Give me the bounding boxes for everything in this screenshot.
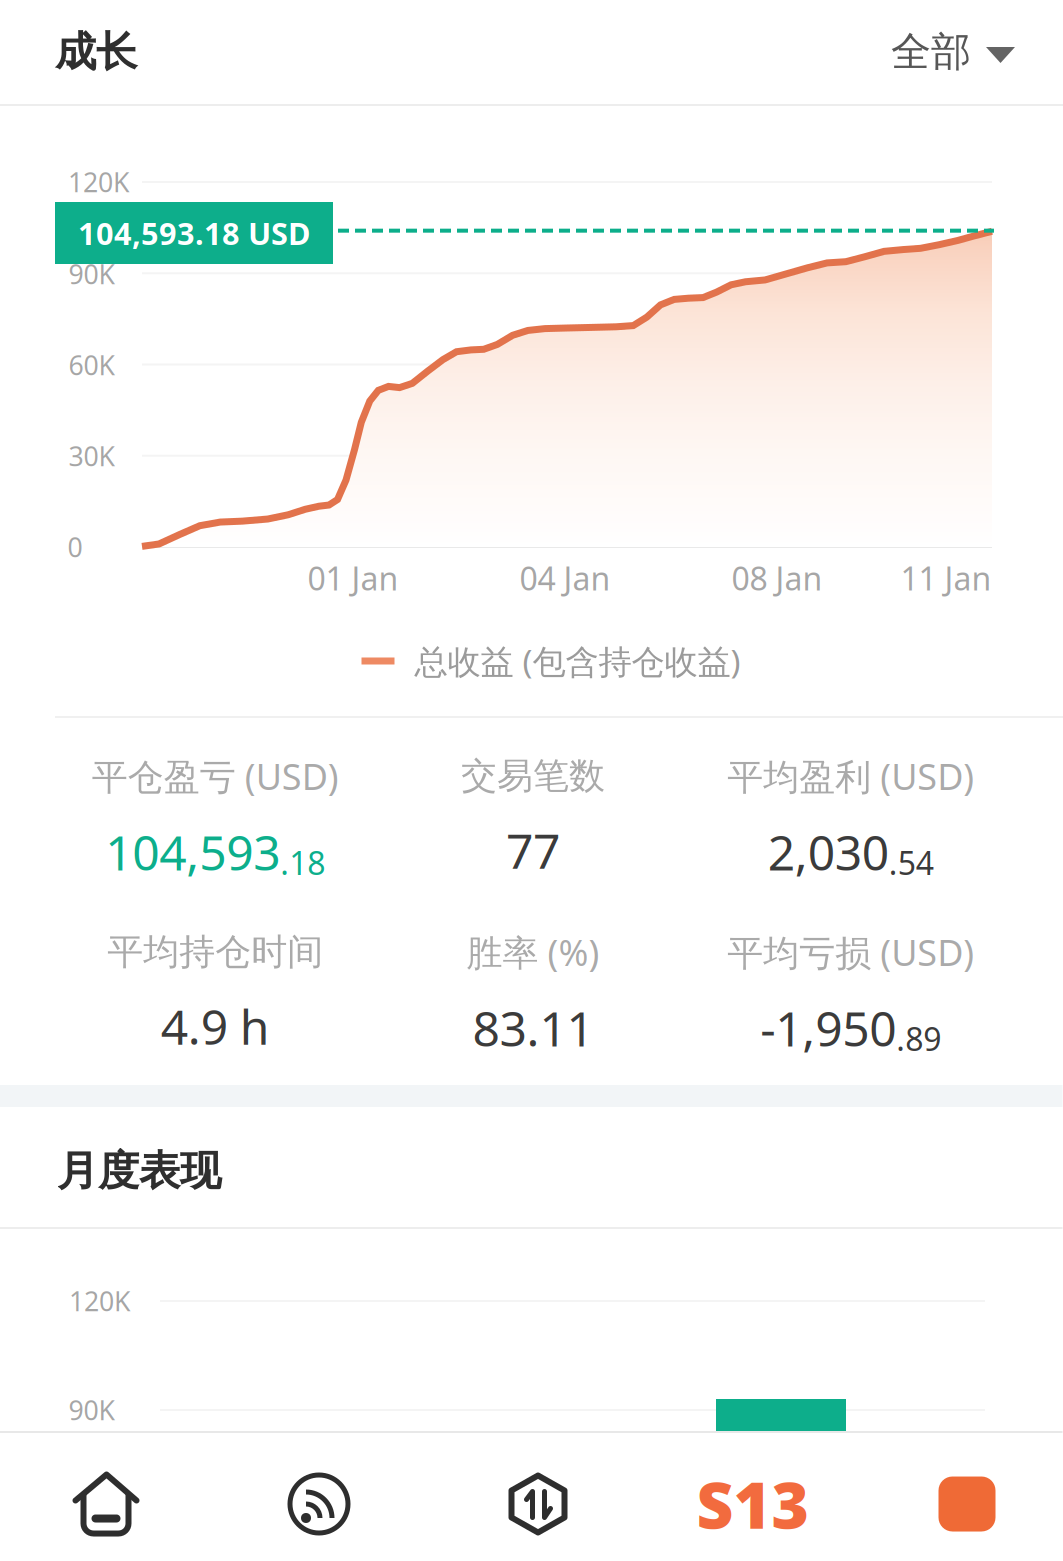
button[interactable]: Transfers [425, 1469, 638, 1539]
staticText: -1,950 [760, 996, 896, 1060]
staticText: 胜率 (%) [466, 928, 599, 976]
staticText: 30K [68, 438, 115, 474]
staticText: 90K [68, 1392, 115, 1428]
button[interactable]: S13 [638, 1469, 851, 1539]
staticText: .18 [280, 841, 325, 884]
staticText: 总收益 (包含持仓收益) [414, 639, 740, 683]
button[interactable]: Feed [212, 1469, 425, 1539]
staticText: 120K [69, 1283, 131, 1319]
staticText: S13 [696, 1461, 809, 1546]
staticText: 月度表现 [57, 1146, 221, 1196]
staticText: 104,593.18 USD [78, 213, 310, 253]
button[interactable]: Home [0, 1469, 212, 1539]
button[interactable]: Profile [851, 1469, 1062, 1539]
staticText: 2,030 [768, 820, 889, 884]
staticText: 0 [67, 529, 82, 565]
staticText: 77 [506, 818, 560, 882]
staticText: 平均盈利 (USD) [727, 752, 974, 800]
staticText: 11 Jan [900, 557, 991, 599]
staticText: .54 [889, 841, 934, 884]
staticText: 4.9 h [161, 994, 270, 1058]
staticText: 104,593 [105, 820, 280, 884]
staticText: 交易笔数 [461, 754, 605, 798]
staticText: .89 [896, 1017, 941, 1060]
staticText: 全部 [891, 27, 971, 76]
staticText: 08 Jan [731, 557, 822, 599]
staticText: 平均持仓时间 [107, 930, 323, 974]
staticText: 90K [68, 256, 115, 292]
staticText: 83.11 [472, 996, 593, 1060]
staticText: 120K [68, 164, 130, 200]
staticText: 04 Jan [519, 557, 610, 599]
staticText: 平仓盈亏 (USD) [92, 752, 339, 800]
staticText: 01 Jan [307, 557, 398, 599]
button[interactable]: 全部 [891, 27, 1015, 76]
staticText: 成长 [55, 27, 137, 77]
staticText: 平均亏损 (USD) [727, 928, 974, 976]
staticText: 60K [68, 347, 115, 383]
